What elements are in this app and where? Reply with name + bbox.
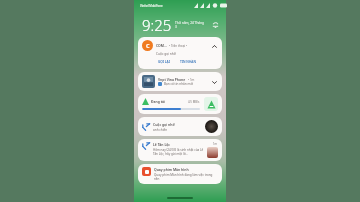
staticText: 4.5 MB/s [188, 100, 200, 104]
button[interactable]: Downloading app [204, 97, 218, 111]
staticText: Quay phim Màn hình đang làm việc trong n… [154, 173, 218, 181]
button[interactable]: C [138, 37, 222, 69]
staticText: 9:25 [142, 15, 172, 35]
staticText: Viettel MobiFone [140, 4, 163, 8]
staticText: Thứ năm, 24 Tháng 3 [175, 21, 205, 29]
staticText: Bạn có tin nhắn mới [164, 82, 194, 86]
staticText: Đang tải xuống 1... [151, 99, 169, 104]
staticText: Vnpt Vina Phone [158, 77, 186, 82]
button[interactable]: Cuộc gọi nhỡ [138, 117, 222, 136]
button[interactable]: TIN NHẮN [178, 59, 198, 65]
button[interactable]: Collapse [210, 42, 218, 50]
button[interactable]: Vnpt Vina Phone [138, 72, 222, 91]
staticText: Cuộc gọi nhỡ [153, 122, 175, 127]
staticText: TIN NHẮN [180, 60, 196, 64]
button[interactable]: Expand [210, 78, 218, 86]
staticText: Lê Tấn Lộc [153, 142, 171, 147]
staticText: Hôm nay (24/03) là sinh nhật của Lê Tấn … [153, 148, 204, 156]
button[interactable]: Notification settings [210, 20, 220, 30]
staticText: GỌI LẠI [158, 60, 170, 64]
button[interactable]: GỌI LẠI [156, 59, 172, 65]
button[interactable]: Đang tải xuống 1... [138, 94, 222, 114]
button[interactable]: Contact photo [207, 147, 218, 158]
button[interactable]: Lê Tấn Lộc [138, 139, 222, 161]
staticText: • 1m [188, 78, 195, 82]
staticText: C [146, 42, 150, 49]
staticText: anh chiến [153, 128, 168, 132]
staticText: Cuộc gọi nhỡ [156, 52, 176, 56]
staticText: Quay phim Màn hình [154, 167, 189, 172]
staticText: 1m [213, 142, 218, 146]
staticText: COM... [156, 43, 167, 48]
button[interactable]: Contact photo [205, 120, 218, 133]
button[interactable]: Quay phim Màn hình [138, 164, 222, 184]
staticText: • Trần thoại • ngay lúc này [169, 44, 189, 48]
